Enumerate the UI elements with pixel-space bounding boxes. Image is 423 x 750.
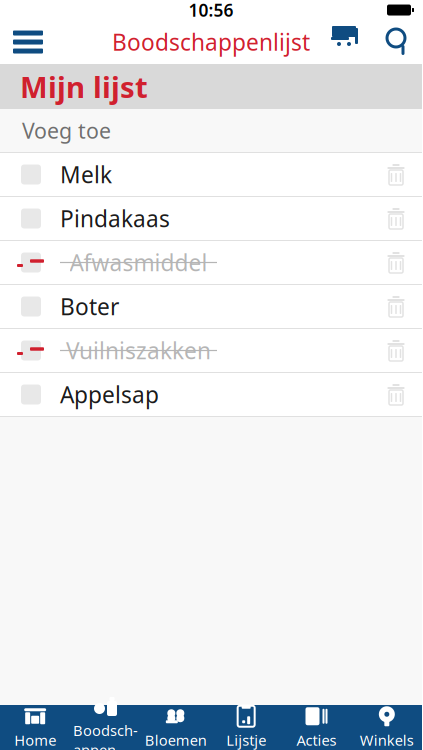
staticText: Bloemen (145, 730, 207, 750)
staticText: Lijstje (226, 730, 266, 750)
staticText: Boodschappenlijst (112, 27, 310, 57)
button[interactable]: Verwijder (374, 328, 418, 372)
staticText: Boodschappen (73, 720, 138, 750)
button[interactable]: Verwijder (374, 284, 418, 328)
staticText: Afwasmiddel (69, 247, 207, 277)
button[interactable]: Winkelwagen (318, 20, 370, 64)
staticText: Home (14, 730, 56, 750)
staticText: Appelsap (60, 379, 159, 409)
staticText: Melk (60, 159, 112, 189)
button[interactable]: Verwijder (374, 196, 418, 240)
button[interactable]: Verwijder (374, 372, 418, 416)
button[interactable]: Afwasmiddel (0, 241, 422, 285)
staticText: Acties (296, 730, 336, 750)
staticText: Boter (60, 291, 119, 321)
button[interactable]: Acties (281, 705, 352, 750)
button[interactable]: Vuilniszakken (0, 329, 422, 373)
staticText: 10:56 (188, 0, 233, 21)
staticText: Voeg toe (22, 116, 111, 145)
button[interactable]: Menu (0, 20, 56, 64)
staticText: Winkels (360, 730, 414, 750)
button[interactable]: Pindakaas (0, 197, 422, 241)
button[interactable]: Melk (0, 153, 422, 197)
button[interactable]: Appelsap (0, 373, 422, 417)
button[interactable]: Verwijder (374, 152, 418, 196)
staticText: Vuilniszakken (66, 335, 211, 365)
button[interactable]: Boter (0, 285, 422, 329)
button[interactable]: Winkels (352, 705, 422, 750)
button[interactable]: Lijstje (211, 705, 281, 750)
staticText: Mijn lijst (20, 67, 148, 106)
button[interactable]: Home (0, 705, 70, 750)
button[interactable]: Boodschappen (70, 705, 141, 750)
button[interactable]: Zoeken (370, 20, 422, 64)
staticText: Pindakaas (60, 203, 170, 233)
button[interactable]: Verwijder (374, 240, 418, 284)
button[interactable]: Bloemen (141, 705, 211, 750)
